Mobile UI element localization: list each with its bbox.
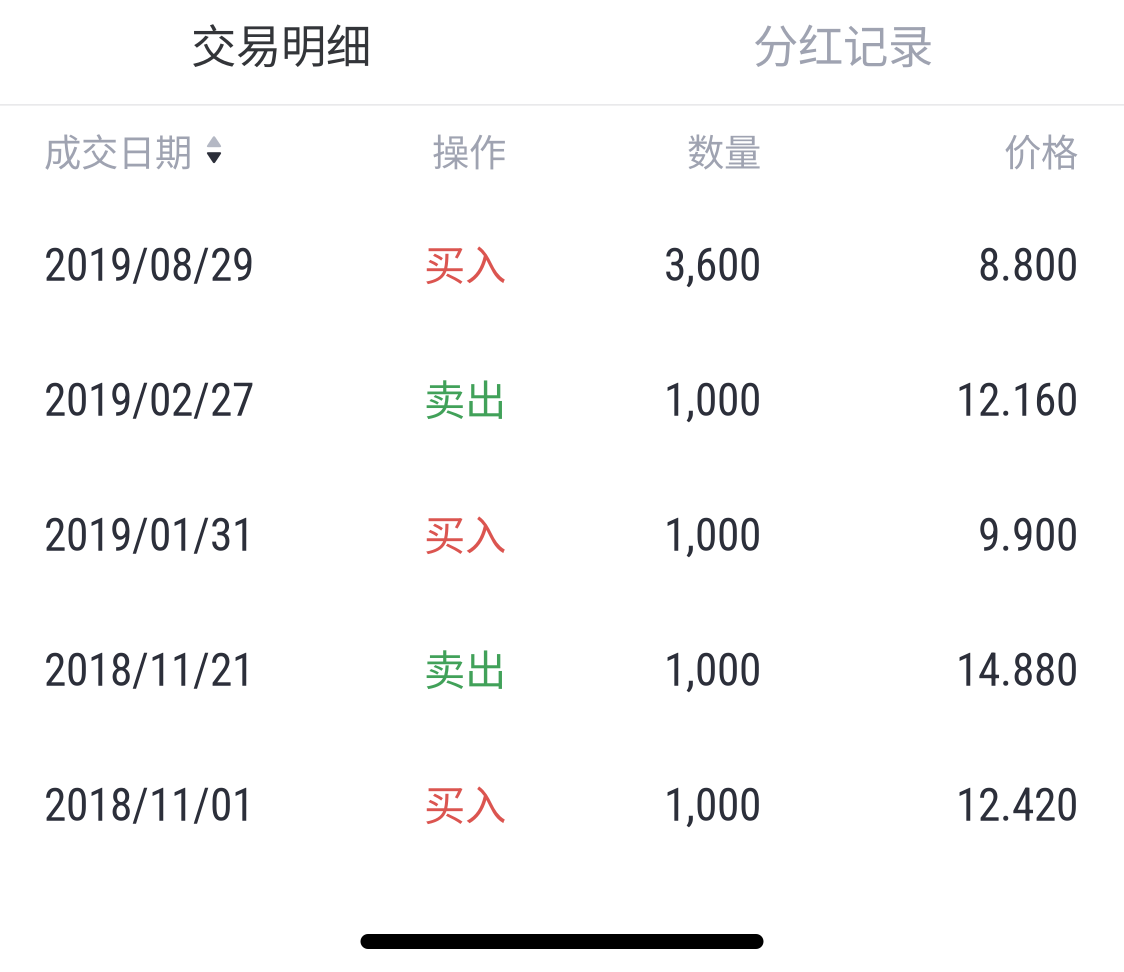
staticText: 卖出 bbox=[424, 637, 506, 697]
staticText: 2019/08/29 bbox=[44, 239, 254, 292]
staticText: 买入 bbox=[424, 232, 506, 292]
staticText: 12.420 bbox=[956, 779, 1078, 832]
staticText: 9.900 bbox=[978, 509, 1078, 562]
staticText: 1,000 bbox=[664, 644, 761, 697]
staticText: 3,600 bbox=[664, 239, 761, 292]
staticText: 成交日期 bbox=[44, 123, 192, 177]
button[interactable]: 交易明细 bbox=[0, 0, 562, 104]
button[interactable]: 数量 bbox=[506, 106, 761, 198]
staticText: 8.800 bbox=[978, 239, 1078, 292]
staticText: 1,000 bbox=[664, 779, 761, 832]
staticText: 交易明细 bbox=[191, 11, 371, 76]
button[interactable]: 价格 bbox=[761, 106, 1078, 198]
staticText: 1,000 bbox=[664, 374, 761, 427]
staticText: 操作 bbox=[432, 123, 506, 177]
button[interactable]: 分红记录 bbox=[562, 0, 1124, 104]
staticText: 1,000 bbox=[664, 509, 761, 562]
staticText: 12.160 bbox=[956, 374, 1078, 427]
staticText: 价格 bbox=[1004, 123, 1078, 177]
staticText: 2019/01/31 bbox=[44, 509, 254, 562]
staticText: 买入 bbox=[424, 772, 506, 832]
button[interactable]: 操作 bbox=[304, 106, 506, 198]
staticText: 2018/11/01 bbox=[44, 779, 254, 832]
staticText: 2018/11/21 bbox=[44, 644, 254, 697]
staticText: 分红记录 bbox=[753, 11, 933, 76]
staticText: 卖出 bbox=[424, 367, 506, 427]
staticText: 14.880 bbox=[956, 644, 1078, 697]
staticText: 买入 bbox=[424, 502, 506, 562]
staticText: 数量 bbox=[687, 123, 761, 177]
staticText: 2019/02/27 bbox=[44, 374, 254, 427]
button[interactable]: 成交日期 bbox=[44, 106, 304, 198]
